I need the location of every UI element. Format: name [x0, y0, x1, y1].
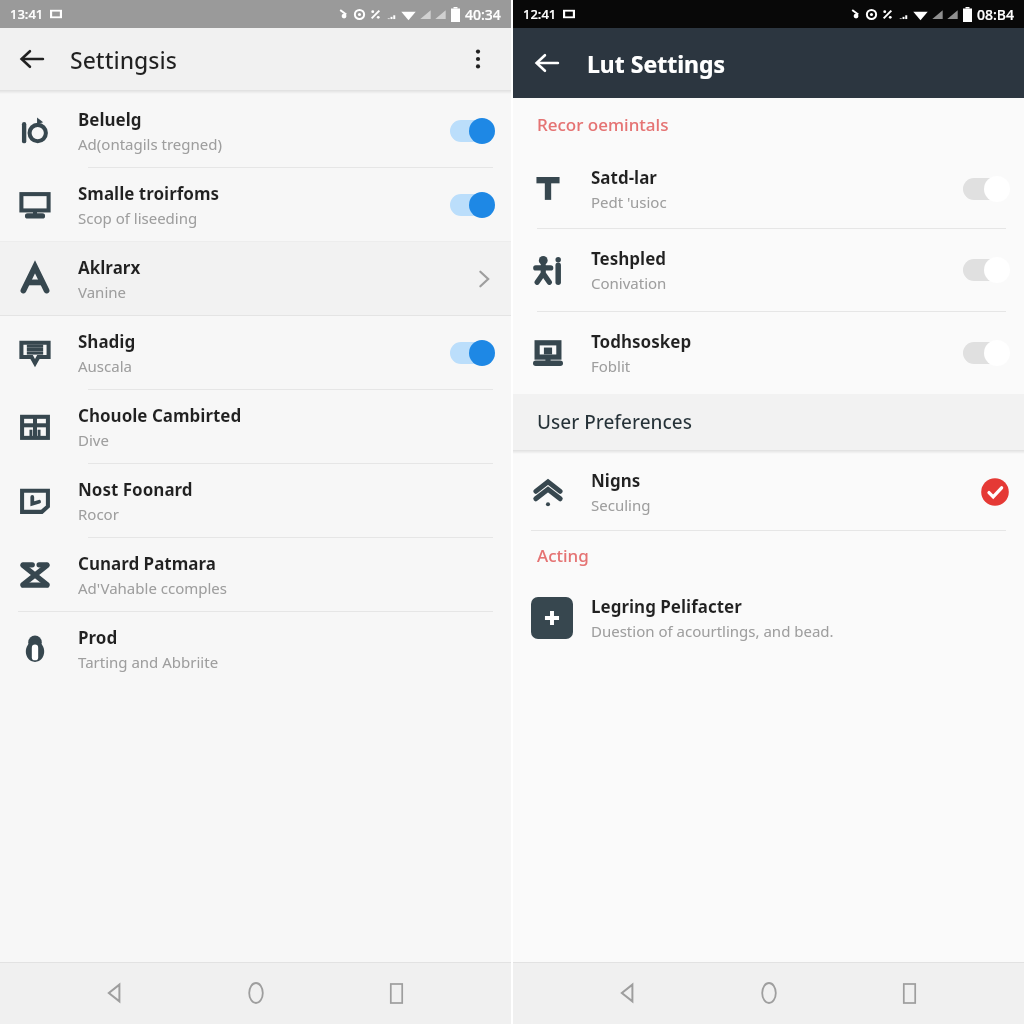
staticText: User Preferences [537, 409, 692, 435]
button[interactable]: Back [90, 968, 140, 1018]
staticText: Beluelg [78, 108, 142, 131]
button[interactable]: Cunard Patmara [0, 538, 511, 611]
staticText: Pedt 'usioc [591, 192, 667, 212]
button[interactable]: Nigns [513, 454, 1024, 531]
button[interactable]: Teshpled [513, 229, 1024, 312]
button[interactable]: Recents [371, 968, 421, 1018]
staticText: 13:41 [10, 5, 44, 23]
button[interactable]: Prod [0, 612, 511, 685]
staticText: Prod [78, 626, 118, 649]
staticText: Aklrarx [78, 256, 141, 279]
staticText: Shadig [78, 330, 136, 353]
staticText: Chouole Cambirted [78, 404, 242, 427]
staticText: Lut Settings [587, 48, 726, 79]
button[interactable]: Nost Foonard [0, 464, 511, 538]
staticText: Recor oemintals [537, 113, 669, 136]
button[interactable]: Back [6, 33, 58, 85]
button[interactable]: Aklrarx [0, 242, 511, 315]
staticText: Todhsoskep [591, 330, 692, 353]
button[interactable]: Legring Pelifacter [513, 579, 1024, 657]
button[interactable]: Chouole Cambirted [0, 390, 511, 464]
staticText: Settingsis [70, 44, 177, 75]
staticText: Ad'Vahable ccomples [78, 578, 227, 598]
button[interactable]: Back [603, 968, 653, 1018]
staticText: Ad(ontagils tregned) [78, 134, 222, 154]
staticText: Teshpled [591, 247, 667, 270]
button[interactable]: Satd-lar [513, 150, 1024, 229]
staticText: Foblit [591, 356, 631, 376]
button[interactable]: Shadig [0, 316, 511, 390]
button[interactable]: Home [231, 968, 281, 1018]
button[interactable]: Home [744, 968, 794, 1018]
button[interactable]: Smalle troirfoms [0, 168, 511, 241]
staticText: Satd-lar [591, 166, 657, 189]
other: Open [471, 266, 497, 292]
staticText: Smalle troirfoms [78, 182, 220, 205]
staticText: Nigns [591, 469, 641, 492]
button[interactable]: Back [521, 37, 573, 89]
staticText: 12:41 [523, 5, 557, 23]
staticText: Seculing [591, 495, 651, 515]
staticText: Conivation [591, 273, 667, 293]
staticText: Vanine [78, 282, 126, 302]
button[interactable]: Todhsoskep [513, 312, 1024, 394]
staticText: Nost Foonard [78, 478, 193, 501]
staticText: Rocor [78, 504, 119, 524]
staticText: Acting [537, 544, 589, 567]
staticText: 08:B4 [977, 5, 1014, 24]
staticText: Cunard Patmara [78, 552, 216, 575]
button[interactable]: Recents [884, 968, 934, 1018]
staticText: 40:34 [465, 5, 501, 24]
staticText: Duestion of acourtlings, and bead. [591, 621, 834, 641]
staticText: Tarting and Abbriite [78, 652, 219, 672]
staticText: Auscala [78, 356, 132, 376]
staticText: Legring Pelifacter [591, 595, 742, 618]
button[interactable]: More options [455, 36, 501, 82]
staticText: Dive [78, 430, 109, 450]
button[interactable]: Beluelg [0, 94, 511, 168]
staticText: Scop of liseeding [78, 208, 198, 228]
